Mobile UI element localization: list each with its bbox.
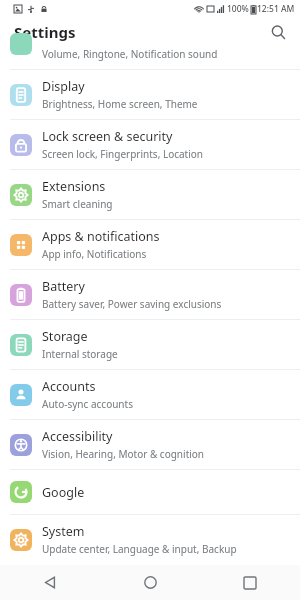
button[interactable]: Apps & notifications	[0, 220, 300, 269]
staticText: Accounts	[42, 378, 96, 395]
button[interactable]: Home	[100, 565, 200, 600]
button[interactable]: Volume, Ringtone, Notification sound	[0, 46, 300, 69]
staticText: Volume, Ringtone, Notification sound	[42, 47, 218, 61]
staticText: Google	[42, 484, 85, 501]
button[interactable]: Accounts	[0, 370, 300, 419]
staticText: Display	[42, 78, 85, 95]
staticText: Auto-sync accounts	[42, 397, 133, 411]
staticText: Vision, Hearing, Motor & cognition	[42, 447, 205, 461]
staticText: App info, Notifications	[42, 247, 147, 261]
staticText: Brightness, Home screen, Theme	[42, 97, 198, 111]
staticText: Screen lock, Fingerprints, Location	[42, 147, 204, 161]
button[interactable]: Battery	[0, 270, 300, 319]
staticText: Update center, Language & input, Backup	[42, 542, 237, 556]
button[interactable]: Search	[265, 19, 291, 45]
button[interactable]: Lock screen & security	[0, 120, 300, 169]
staticText: Settings	[14, 22, 76, 42]
staticText: Accessibility	[42, 428, 113, 445]
staticText: System	[42, 523, 85, 540]
staticText: Internal storage	[42, 347, 118, 361]
staticText: Battery saver, Power saving exclusions	[42, 297, 222, 311]
button[interactable]: Extensions	[0, 170, 300, 219]
staticText: Apps & notifications	[42, 228, 160, 245]
button[interactable]: System	[0, 515, 300, 564]
button[interactable]: Back	[0, 565, 100, 600]
button[interactable]: Accessibility	[0, 420, 300, 469]
staticText: Smart cleaning	[42, 197, 113, 211]
button[interactable]: Recents	[200, 565, 300, 600]
staticText: Extensions	[42, 178, 106, 195]
button[interactable]: Google	[0, 470, 300, 514]
staticText: Lock screen & security	[42, 128, 173, 145]
button[interactable]: Display	[0, 70, 300, 119]
staticText: Battery	[42, 278, 85, 295]
button[interactable]: Storage	[0, 320, 300, 369]
staticText: Storage	[42, 328, 88, 345]
staticText: 100%	[227, 3, 249, 15]
staticText: 12:51 AM	[257, 3, 295, 15]
